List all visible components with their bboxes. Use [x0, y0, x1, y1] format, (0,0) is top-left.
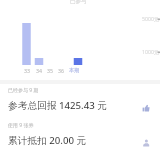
button[interactable]: 已参与: [70, 0, 87, 5]
staticText: 33: [24, 67, 30, 74]
staticText: 已参与: [70, 0, 87, 5]
staticText: 35: [47, 67, 53, 74]
staticText: 36: [58, 67, 64, 74]
button[interactable]: 已经参与 9 期: [0, 84, 160, 117]
staticText: 本期: [69, 67, 80, 74]
other: Coupons: [140, 137, 152, 149]
staticText: 5000元: [142, 15, 160, 22]
staticText: 1000元: [142, 48, 160, 55]
staticText: 使用 9 张券: [8, 122, 34, 129]
other: Returns: [140, 102, 152, 114]
staticText: 累计抵扣 20.00 元: [8, 134, 87, 147]
staticText: 参考总回报 1425.43 元: [8, 99, 108, 112]
staticText: 34: [36, 67, 42, 74]
staticText: 已经参与 9 期: [8, 87, 39, 94]
button[interactable]: 使用 9 张券: [0, 119, 160, 152]
